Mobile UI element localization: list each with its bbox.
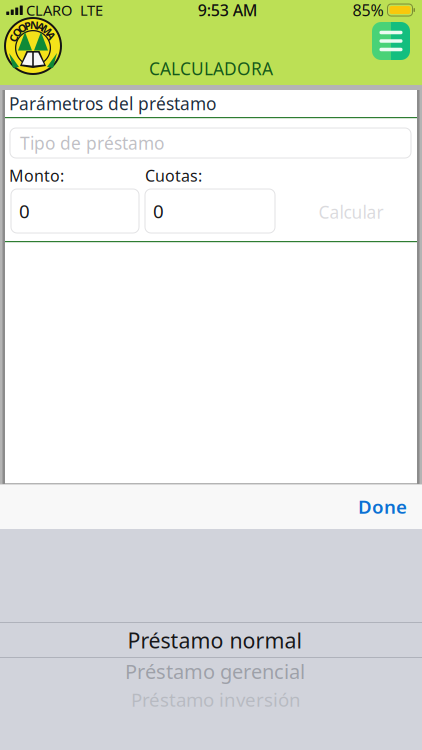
button[interactable]: Done [338,484,422,529]
staticText: O [18,21,26,35]
staticText: Préstamo inversión [131,687,301,712]
staticText: Préstamo gerencial [125,658,305,685]
staticText: O [13,25,21,40]
staticText: CALCULADORA [149,57,273,80]
staticText: Parámetros del préstamo [9,92,216,115]
staticText: N [30,18,39,32]
button[interactable]: Calcular [306,196,396,228]
staticText: 0 [19,199,30,223]
staticText: C [10,31,17,45]
staticText: M [41,23,51,37]
staticText: Calcular [318,200,383,223]
staticText: LTE [80,0,103,20]
staticText: CLARO [26,0,72,20]
staticText: 0 [153,199,164,223]
staticText: Done [358,494,407,519]
staticText: A [48,28,55,43]
button[interactable]: Menu [372,22,410,60]
button[interactable]: Tipo de préstamo [10,128,411,158]
staticText: Préstamo normal [127,626,302,654]
staticText: A [37,19,44,34]
staticText: P [24,18,31,33]
staticText: 85% [352,0,383,21]
staticText: 9:53 AM [198,0,258,21]
staticText: Tipo de préstamo [20,131,164,154]
staticText: Cuotas: [145,165,202,186]
staticText: Monto: [9,165,64,186]
